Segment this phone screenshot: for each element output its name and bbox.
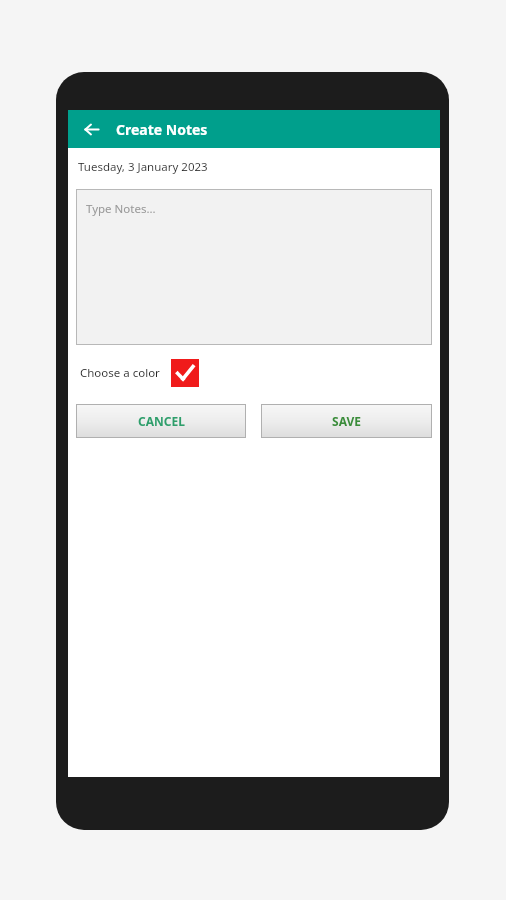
staticText: SAVE: [332, 413, 361, 429]
staticText: Tuesday, 3 January 2023: [78, 159, 208, 175]
staticText: Create Notes: [116, 120, 208, 139]
staticText: Type Notes...: [86, 201, 156, 217]
button[interactable]: Type Notes...: [76, 189, 432, 345]
button[interactable]: Back: [78, 116, 104, 142]
staticText: CANCEL: [138, 413, 185, 429]
button[interactable]: CANCEL: [76, 404, 246, 438]
button[interactable]: Choose a color: [171, 359, 199, 387]
staticText: Choose a color: [80, 365, 160, 381]
button[interactable]: SAVE: [261, 404, 432, 438]
